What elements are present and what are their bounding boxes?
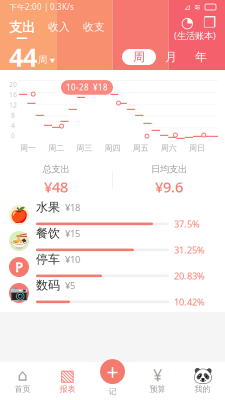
- staticText: ▧: [60, 366, 75, 384]
- staticText: 🍎: [10, 207, 28, 223]
- staticText: 4: [11, 121, 15, 130]
- staticText: ⊿ ≋: [184, 2, 201, 12]
- staticText: 停车: [36, 252, 60, 267]
- staticText: 首页: [14, 384, 30, 394]
- button[interactable]: 📷: [0, 280, 225, 306]
- button[interactable]: 收入: [48, 20, 70, 37]
- staticText: 20.83%: [174, 270, 205, 282]
- staticText: ¥5: [65, 279, 75, 291]
- button[interactable]: 🍎: [0, 202, 225, 228]
- staticText: ❐: [203, 14, 216, 31]
- staticText: 收支: [83, 20, 105, 33]
- button[interactable]: P: [0, 254, 225, 280]
- button[interactable]: ⌂: [0, 362, 45, 400]
- staticText: ¥10: [65, 253, 80, 265]
- button[interactable]: ▧: [45, 362, 90, 400]
- staticText: 下午2:00 | 0.3K/s: [9, 2, 74, 12]
- button[interactable]: 收支: [83, 20, 105, 37]
- staticText: ◔: [181, 14, 194, 31]
- staticText: ¥9.6: [155, 177, 183, 196]
- staticText: P: [15, 258, 23, 276]
- staticText: 总支出: [43, 163, 70, 175]
- staticText: 水果: [36, 200, 60, 215]
- staticText: 0: [11, 131, 15, 140]
- button[interactable]: 年: [186, 49, 216, 65]
- staticText: +: [106, 357, 118, 386]
- staticText: 报表: [59, 384, 75, 394]
- staticText: 支出: [9, 19, 35, 35]
- button[interactable]: 周: [122, 49, 156, 65]
- staticText: ¥18: [65, 201, 80, 213]
- staticText: 收入: [48, 20, 70, 33]
- staticText: ¥: [153, 364, 162, 386]
- staticText: 周日: [189, 143, 205, 153]
- button[interactable]: 44: [9, 40, 55, 74]
- staticText: 周六: [161, 143, 177, 153]
- staticText: ⌂: [17, 366, 27, 384]
- button[interactable]: 🍜: [0, 228, 225, 254]
- staticText: 37.5%: [174, 218, 200, 230]
- staticText: ¥48: [44, 177, 68, 196]
- staticText: 周: [133, 50, 145, 64]
- button[interactable]: 切换账本: [203, 16, 216, 28]
- staticText: ¥15: [65, 227, 80, 239]
- button[interactable]: 月: [156, 49, 186, 65]
- staticText: 周三: [76, 143, 92, 153]
- staticText: 10-28 ¥18: [66, 82, 108, 93]
- staticText: 10.42%: [174, 296, 205, 308]
- staticText: 记: [108, 387, 116, 397]
- staticText: 12: [9, 100, 17, 109]
- button[interactable]: (生活账本): [174, 29, 216, 42]
- button[interactable]: 🐼: [180, 362, 225, 400]
- staticText: 日均支出: [151, 163, 187, 175]
- staticText: 周五: [133, 143, 149, 153]
- staticText: 8: [11, 111, 15, 120]
- staticText: 月: [165, 50, 177, 64]
- staticText: 周四: [104, 143, 120, 153]
- staticText: 餐饮: [36, 226, 60, 241]
- staticText: 预算: [149, 384, 165, 394]
- button[interactable]: ¥: [135, 362, 180, 400]
- staticText: 🍜: [10, 233, 28, 249]
- staticText: 16: [9, 90, 17, 99]
- staticText: 🐼: [192, 366, 212, 384]
- staticText: 44: [9, 40, 37, 74]
- button[interactable]: 支出: [9, 19, 35, 39]
- button[interactable]: 统计图表: [181, 16, 194, 28]
- staticText: 周一: [20, 143, 36, 153]
- staticText: 我的: [194, 384, 210, 394]
- staticText: 📷: [10, 285, 28, 301]
- staticText: 周 ▾: [38, 54, 55, 66]
- staticText: 20: [9, 80, 17, 89]
- button[interactable]: 记一笔: [90, 358, 135, 400]
- staticText: 数码: [36, 278, 60, 293]
- staticText: (生活账本): [174, 29, 216, 42]
- staticText: 周二: [48, 143, 64, 153]
- staticText: 年: [195, 50, 207, 64]
- staticText: 31.25%: [174, 244, 205, 256]
